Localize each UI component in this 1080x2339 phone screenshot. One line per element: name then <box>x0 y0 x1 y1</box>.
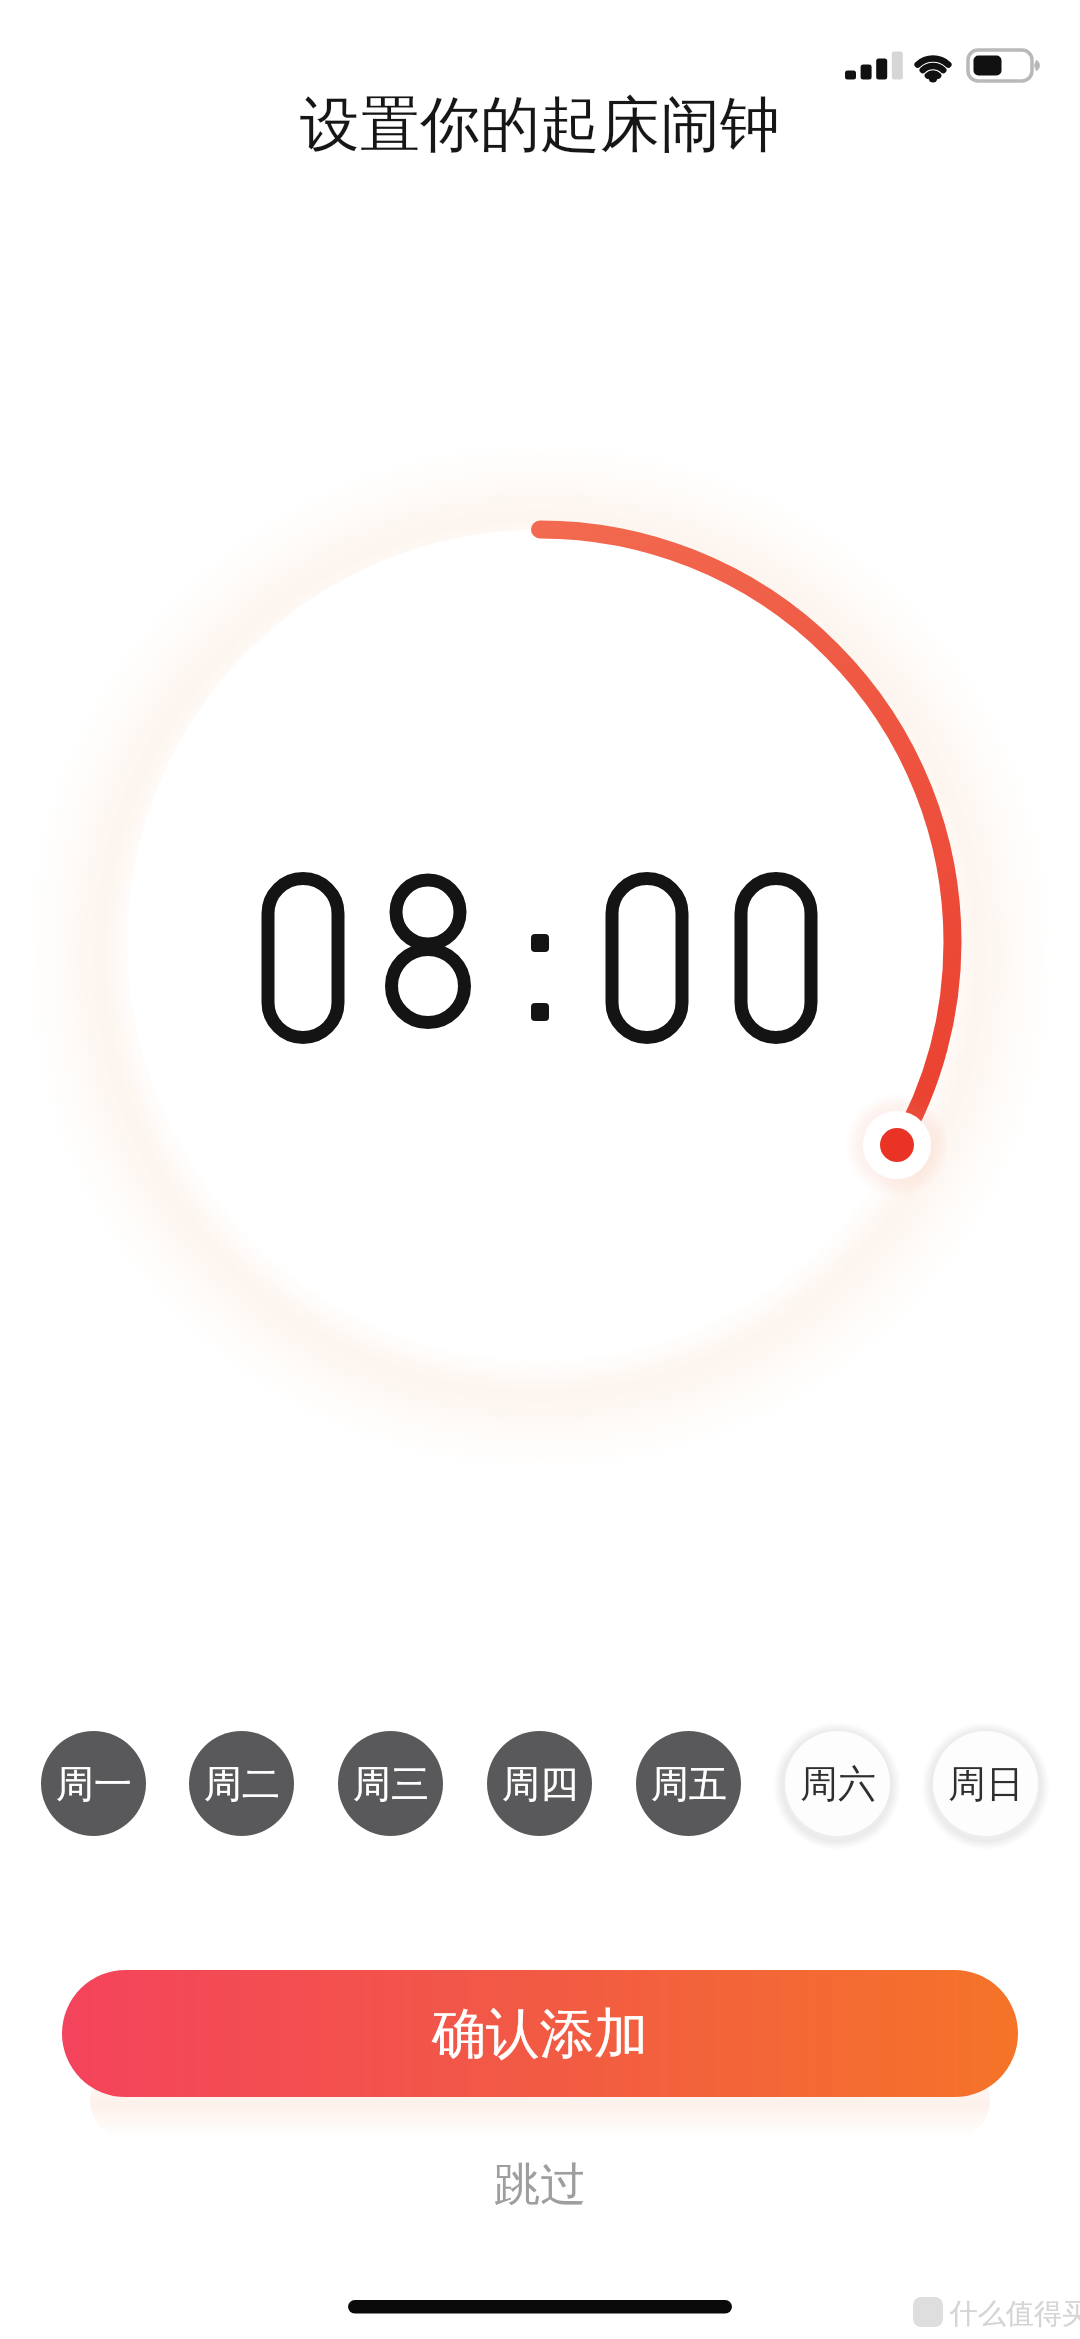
button[interactable]: 周二 <box>189 1731 294 1836</box>
staticText: 周三 <box>353 1760 429 1808</box>
staticText: 周五 <box>651 1760 727 1808</box>
button[interactable]: 周五 <box>636 1731 741 1836</box>
button[interactable]: 周一 <box>41 1731 146 1836</box>
staticText: 确认添加 <box>432 2000 648 2068</box>
staticText: 设置你的起床闹钟 <box>300 87 780 157</box>
button[interactable]: 周日 <box>933 1731 1038 1836</box>
staticText: 跳过 <box>494 2156 586 2214</box>
staticText: 什么值得买 <box>950 2296 1080 2331</box>
staticText: 周日 <box>948 1760 1024 1808</box>
staticText: 周四 <box>502 1760 578 1808</box>
button[interactable]: 周六 <box>785 1731 890 1836</box>
staticText: 周一 <box>56 1760 132 1808</box>
button[interactable]: 周四 <box>487 1731 592 1836</box>
staticText: 周二 <box>204 1760 280 1808</box>
button[interactable]: 跳过 <box>440 2145 640 2225</box>
button[interactable]: 周三 <box>338 1731 443 1836</box>
staticText: 周六 <box>800 1760 876 1808</box>
button[interactable]: 确认添加 <box>62 1970 1018 2097</box>
